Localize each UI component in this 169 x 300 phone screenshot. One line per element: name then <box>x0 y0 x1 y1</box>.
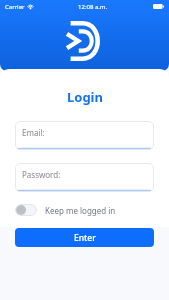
staticText: Login <box>67 88 103 106</box>
staticText: 12:08 a.m. <box>78 3 108 11</box>
staticText: Keep me logged in <box>45 205 116 216</box>
button[interactable]: Password: <box>15 163 154 192</box>
staticText: Password: <box>22 169 61 180</box>
staticText: Carrier <box>5 3 25 11</box>
button[interactable]: Keep me logged in <box>15 204 154 216</box>
other: App logo <box>65 21 105 61</box>
button[interactable]: Enter <box>15 228 154 247</box>
staticText: Enter <box>74 232 96 244</box>
button[interactable]: Email: <box>15 121 154 150</box>
staticText: Email: <box>22 127 45 138</box>
